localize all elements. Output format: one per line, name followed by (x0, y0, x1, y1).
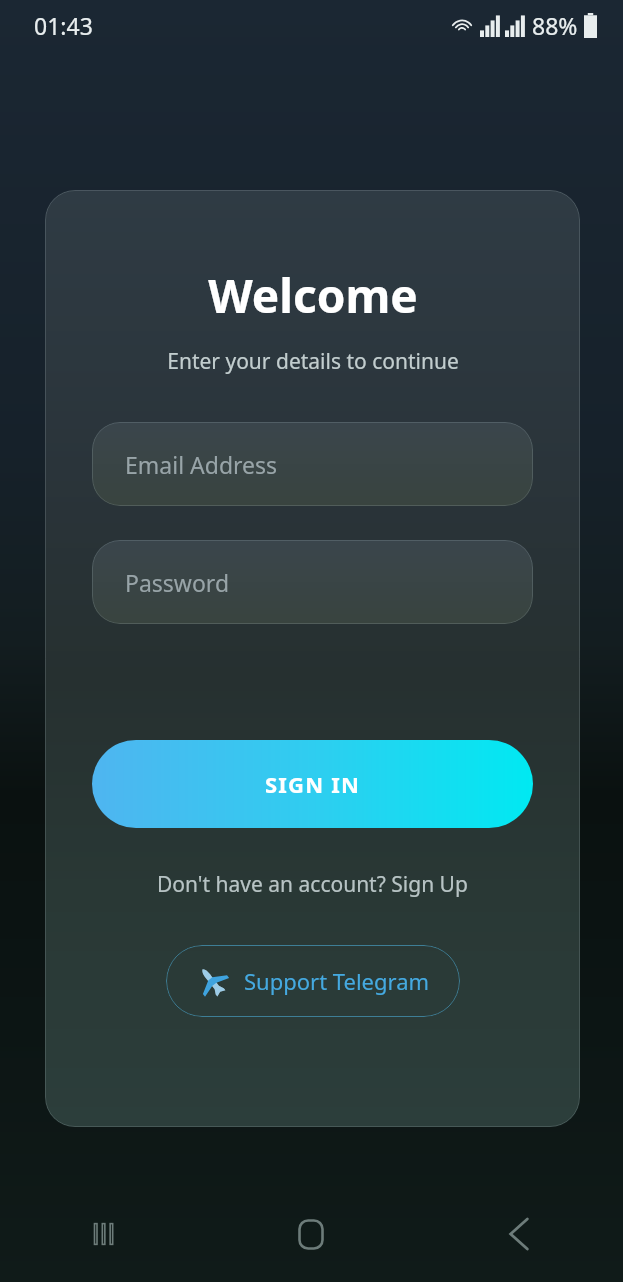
staticText: 01:43 (34, 10, 93, 41)
button[interactable]: Back (415, 1186, 623, 1282)
staticText: 88% (532, 10, 578, 41)
staticText: Don't have an account? Sign Up (157, 870, 468, 899)
staticText: Welcome (208, 264, 418, 327)
staticText: Email Address (125, 449, 278, 480)
button[interactable]: Password (92, 540, 533, 624)
button[interactable]: SIGN IN (92, 740, 533, 828)
button[interactable]: Recents (0, 1186, 207, 1282)
button[interactable]: Support Telegram (166, 945, 460, 1017)
staticText: Password (125, 567, 230, 598)
button[interactable]: Don't have an account? Sign Up (149, 866, 476, 903)
button[interactable]: Home (207, 1186, 415, 1282)
button[interactable]: Email Address (92, 422, 533, 506)
staticText: Support Telegram (244, 966, 430, 996)
staticText: SIGN IN (265, 769, 361, 799)
staticText: Enter your details to continue (167, 347, 459, 376)
